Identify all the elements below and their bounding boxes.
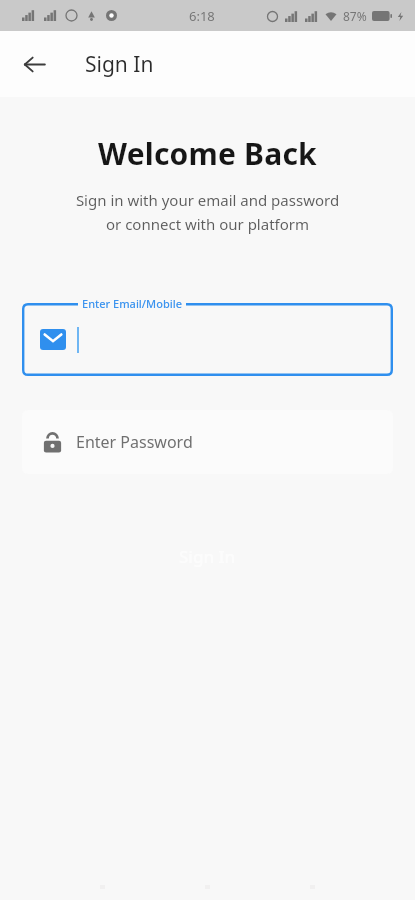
staticText: or connect with our platform	[0, 214, 415, 234]
staticText: Welcome Back	[0, 133, 415, 174]
staticText: Sign In	[85, 50, 154, 79]
button[interactable]: Back	[10, 40, 58, 88]
button[interactable]: Enter Email/Mobile	[22, 296, 393, 376]
staticText: Enter Password	[76, 431, 193, 453]
staticText: Sign in with your email and password	[0, 190, 415, 210]
staticText: 6:18	[189, 7, 215, 25]
staticText: Enter Email/Mobile	[82, 296, 182, 311]
button[interactable]: Enter Password	[22, 410, 393, 474]
staticText: 87%	[343, 8, 367, 24]
